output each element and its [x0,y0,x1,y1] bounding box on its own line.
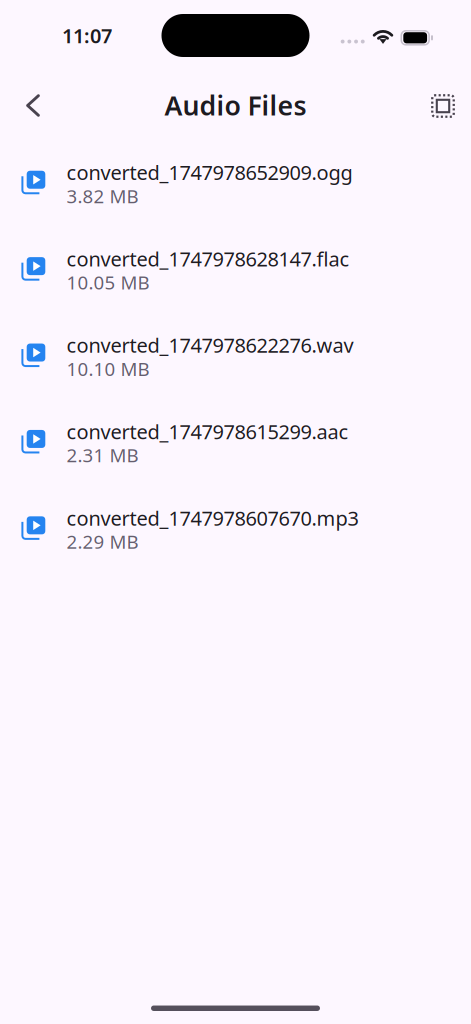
staticText: 3.82 MB [66,183,138,208]
staticText: Audio Files [164,87,306,123]
staticText: converted_1747978628147.flac [66,245,349,272]
staticText: 10.05 MB [66,270,149,295]
button[interactable]: converted_1747978622276.wav [0,306,471,392]
staticText: 2.31 MB [66,443,138,467]
staticText: 10.10 MB [66,356,149,381]
staticText: converted_1747978607670.mp3 [66,505,358,531]
button[interactable]: Select [420,83,466,129]
staticText: converted_1747978652909.ogg [66,159,352,186]
button[interactable]: converted_1747978652909.ogg [0,133,471,219]
button[interactable]: converted_1747978615299.aac [0,392,471,479]
staticText: 11:07 [62,22,112,49]
staticText: converted_1747978615299.aac [66,418,348,445]
staticText: converted_1747978622276.wav [66,332,353,358]
staticText: 2.29 MB [66,529,138,554]
button[interactable]: converted_1747978628147.flac [0,219,471,306]
button[interactable]: Back [10,82,56,128]
button[interactable]: converted_1747978607670.mp3 [0,479,471,565]
